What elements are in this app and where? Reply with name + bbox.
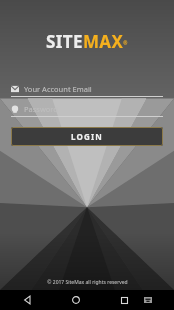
staticText: SITEMAX® xyxy=(46,30,128,53)
button[interactable]: Switch keyboard xyxy=(140,292,156,308)
button[interactable]: Back xyxy=(18,290,38,310)
button[interactable]: Home xyxy=(66,290,86,310)
staticText: LOGIN xyxy=(71,131,104,142)
button[interactable]: Recent apps xyxy=(114,290,134,310)
button[interactable]: Password xyxy=(11,102,163,117)
staticText: Your Account Email xyxy=(24,84,92,94)
button[interactable]: LOGIN xyxy=(11,127,163,146)
button[interactable]: Email xyxy=(11,82,163,97)
staticText: © 2017 SiteMax all rights reserved xyxy=(47,279,128,286)
staticText: Password xyxy=(24,104,58,114)
